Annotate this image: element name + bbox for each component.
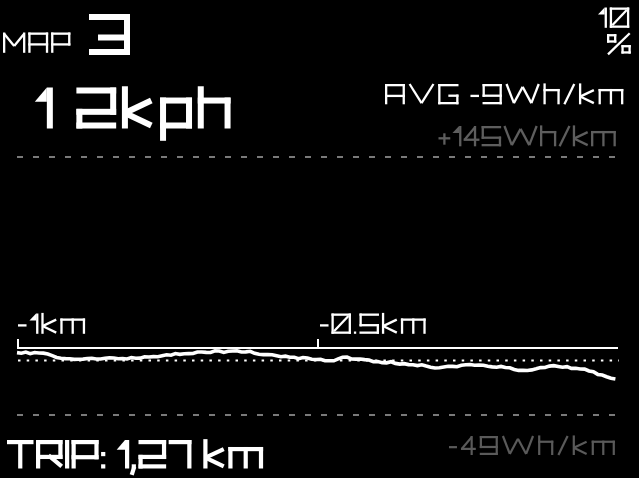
button[interactable]: Ride dashboard — [0, 0, 639, 478]
